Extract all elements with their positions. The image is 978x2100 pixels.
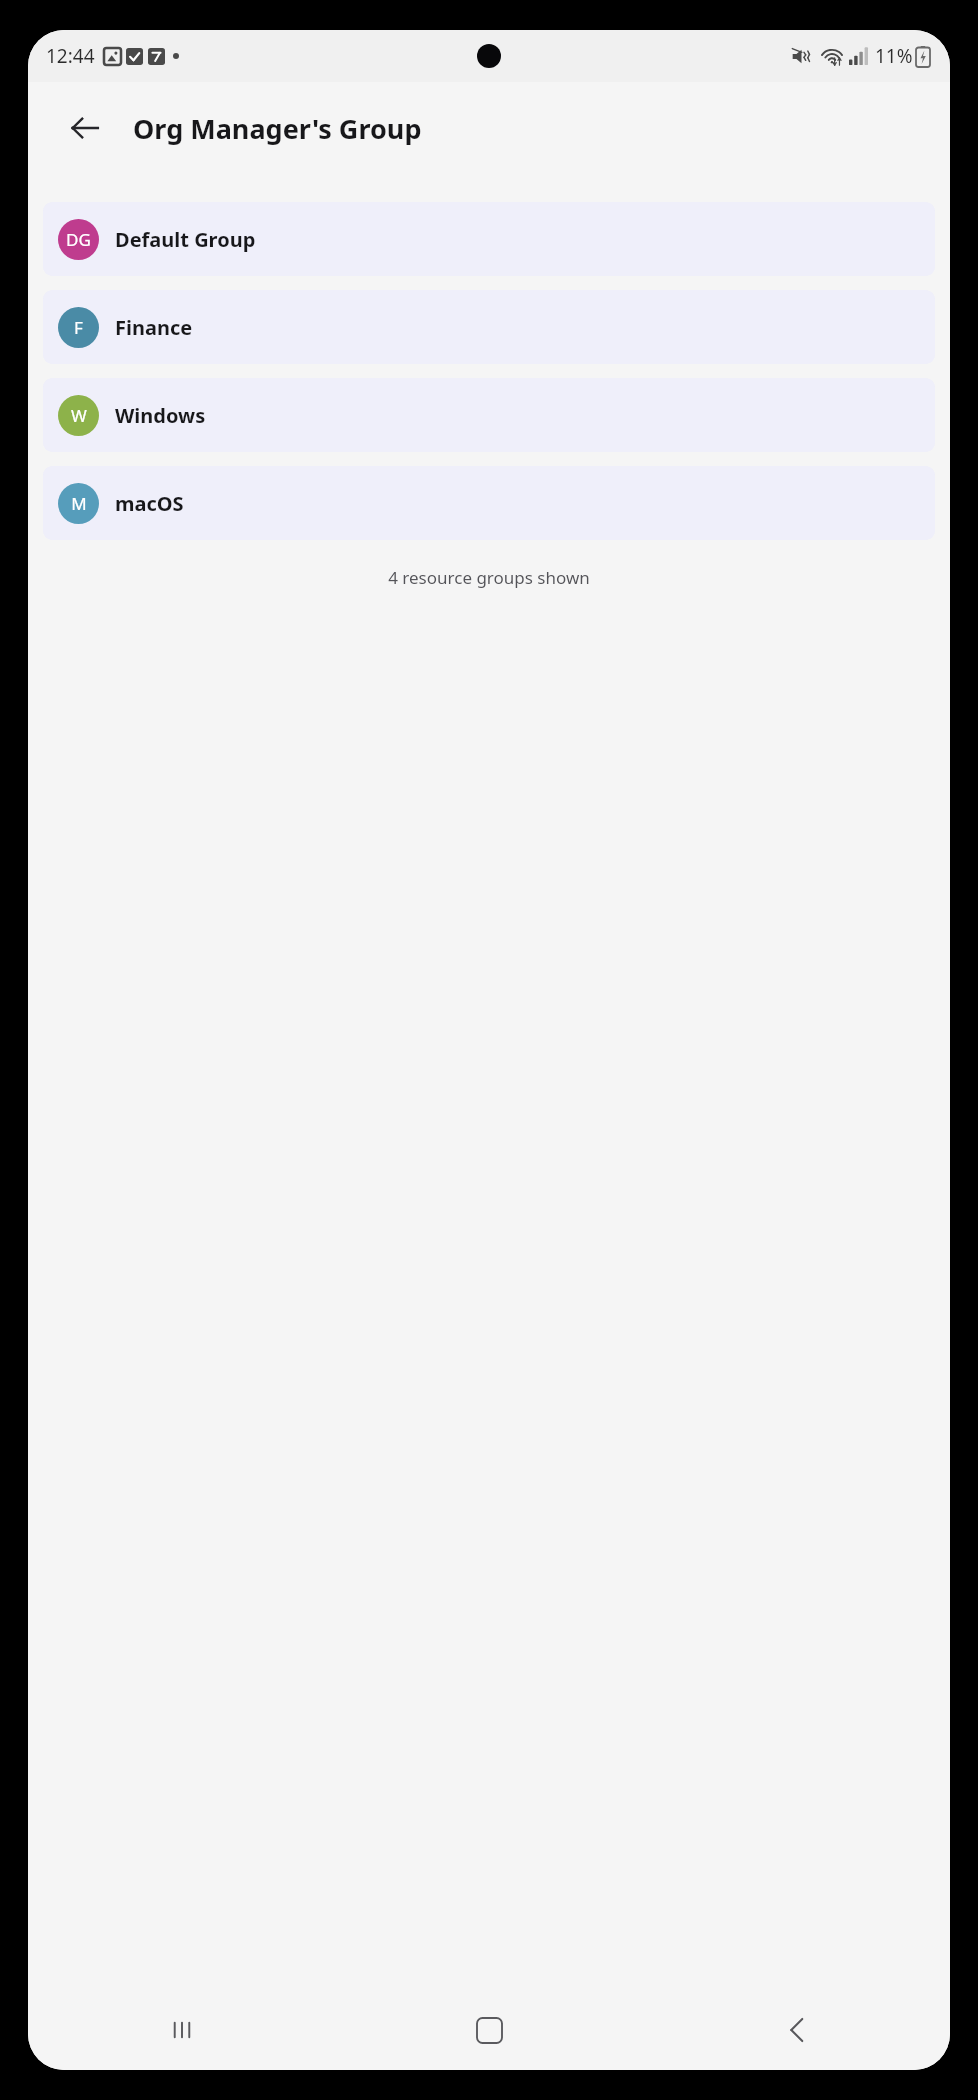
staticText: macOS [115,490,184,517]
staticText: F [74,316,83,339]
button[interactable]: DG [43,202,935,276]
staticText: 11% [875,43,913,69]
button[interactable]: Back [643,1990,950,2070]
button[interactable]: F [43,290,935,364]
button[interactable]: Back [60,103,110,153]
staticText: Windows [115,402,206,429]
staticText: Org Manager's Group [133,110,422,147]
button[interactable]: Recent apps [28,1990,336,2070]
staticText: M [71,492,87,515]
staticText: Finance [115,314,193,341]
button[interactable]: Home [336,1990,643,2070]
staticText: 12:44 [46,43,95,69]
staticText: 4 resource groups shown [388,566,590,589]
staticText: Default Group [115,226,256,253]
staticText: DG [66,228,91,251]
staticText: W [71,404,87,427]
button[interactable]: W [43,378,935,452]
button[interactable]: M [43,466,935,540]
